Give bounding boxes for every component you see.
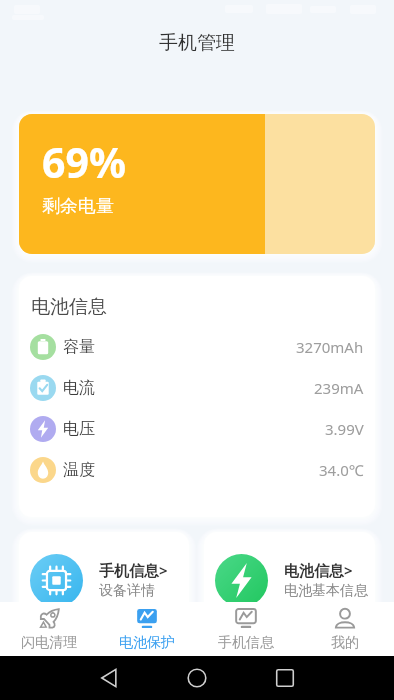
staticText: 闪电清理	[21, 634, 77, 652]
staticText: 电池保护	[119, 634, 175, 652]
button[interactable]: 69%	[19, 114, 375, 254]
button[interactable]: 电压	[19, 408, 375, 449]
staticText: 电池信息>	[284, 560, 353, 580]
staticText: 设备详情	[99, 582, 155, 600]
button[interactable]: Home	[175, 656, 219, 700]
staticText: 手机管理	[159, 31, 235, 55]
button[interactable]: 闪电清理	[0, 602, 98, 656]
staticText: 手机信息	[218, 634, 274, 652]
staticText: 3270mAh	[296, 337, 364, 357]
staticText: 我的	[331, 634, 359, 652]
button[interactable]: 我的	[295, 602, 394, 656]
button[interactable]: 手机信息	[196, 602, 295, 656]
button[interactable]: Recents	[263, 656, 307, 700]
button[interactable]: 容量	[19, 326, 375, 367]
staticText: 电池信息	[31, 295, 107, 319]
button[interactable]: 电池保护	[98, 602, 196, 656]
staticText: 容量	[63, 337, 95, 357]
button[interactable]: 手机信息>	[19, 532, 189, 628]
staticText: 34.0℃	[319, 460, 364, 480]
button[interactable]: 温度	[19, 449, 375, 490]
staticText: 剩余电量	[42, 195, 114, 218]
button[interactable]: 电池信息>	[204, 532, 375, 628]
staticText: 手机信息>	[99, 560, 168, 580]
button[interactable]: Back	[87, 656, 131, 700]
staticText: 3.99V	[325, 419, 364, 439]
staticText: 电池基本信息	[284, 582, 368, 600]
staticText: 69%	[42, 134, 126, 190]
button[interactable]: 电流	[19, 367, 375, 408]
staticText: 温度	[63, 460, 95, 480]
staticText: 239mA	[314, 378, 364, 398]
staticText: 电压	[63, 419, 95, 439]
staticText: 电流	[63, 378, 95, 398]
